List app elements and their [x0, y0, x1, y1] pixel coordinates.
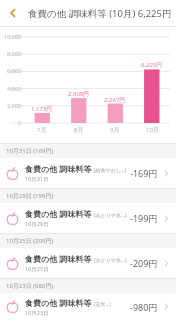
- staticText: (みどりや氷…): [94, 257, 127, 264]
- staticText: -980円: [130, 301, 158, 313]
- staticText: 10,000: [4, 33, 22, 40]
- button[interactable]: 食費の他 調味料等: [0, 158, 176, 188]
- staticText: 10月25日 (209円): [6, 237, 54, 245]
- staticText: 2,267円: [104, 96, 126, 104]
- staticText: -209円: [130, 257, 158, 269]
- staticText: 6,000: [7, 67, 22, 74]
- staticText: 2,000: [7, 102, 22, 109]
- staticText: 6,225円: [141, 61, 163, 69]
- staticText: 2,900円: [68, 90, 90, 98]
- staticText: 食費の他 調味料等: [25, 297, 92, 308]
- staticText: 10月25日: [25, 265, 49, 273]
- staticText: 食費の他 調味料等: [25, 208, 92, 219]
- staticText: 食費の他 調味料等: [25, 253, 92, 264]
- button[interactable]: 食費の他 調味料等: [0, 203, 176, 233]
- staticText: -169円: [130, 167, 158, 179]
- staticText: 7月: [37, 126, 47, 134]
- staticText: 10月31日: [25, 175, 49, 183]
- staticText: 10月29日: [25, 220, 49, 228]
- staticText: -199円: [130, 212, 158, 224]
- staticText: 10月: [146, 126, 159, 134]
- staticText: 10月29日 (199円): [6, 192, 54, 200]
- button[interactable]: 食費の他 調味料等: [0, 248, 176, 278]
- staticText: 8,000: [7, 50, 22, 57]
- button[interactable]: Back: [0, 0, 26, 26]
- staticText: 8月: [74, 126, 84, 134]
- staticText: 食費の他 調味料等 (10月) 6,225円: [28, 7, 172, 20]
- staticText: 9月: [110, 126, 120, 134]
- staticText: (給食やおし…): [94, 167, 127, 174]
- staticText: 10月23日: [25, 309, 49, 317]
- staticText: (玄米…): [94, 301, 111, 308]
- staticText: 1,173円: [31, 105, 53, 113]
- staticText: 10月23日 (980円): [6, 282, 54, 290]
- staticText: 4,000: [7, 85, 22, 92]
- staticText: 10月31日 (169円): [6, 147, 54, 155]
- staticText: (みどりや氷…): [94, 212, 127, 219]
- button[interactable]: 食費の他 調味料等: [0, 293, 176, 320]
- staticText: 食費の他 調味料等: [25, 163, 92, 174]
- staticText: 0: [18, 119, 22, 126]
